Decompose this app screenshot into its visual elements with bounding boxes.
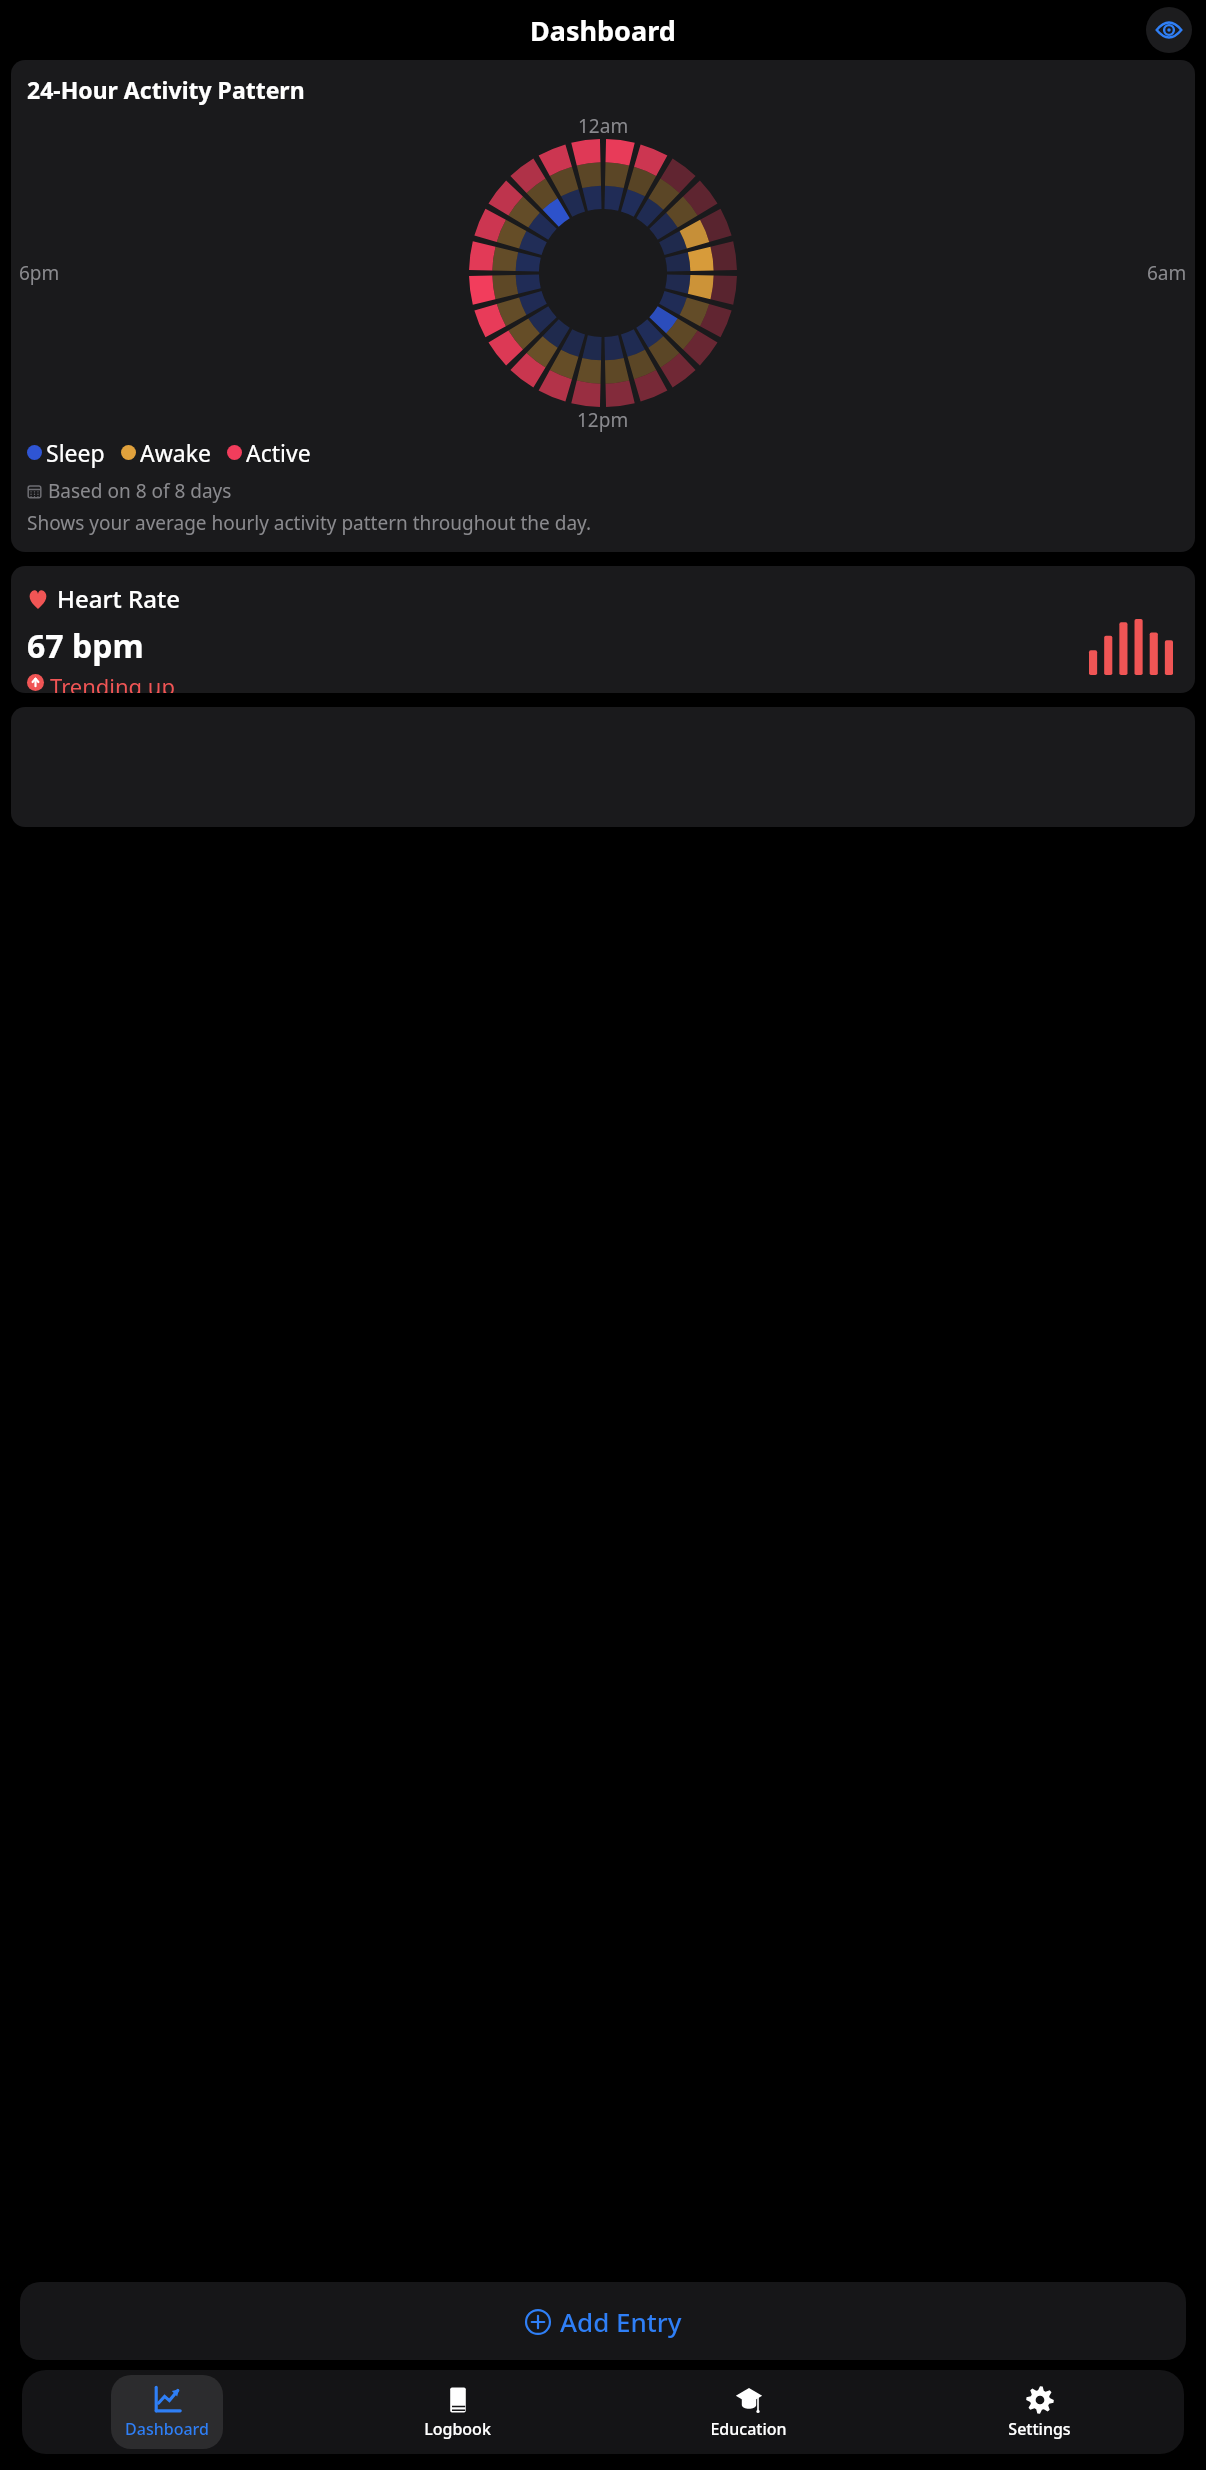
staticText: Shows your average hourly activity patte… xyxy=(27,510,592,536)
staticText: Active xyxy=(246,437,311,468)
button[interactable]: Logbook xyxy=(405,2375,509,2449)
button[interactable]: Heart Rate xyxy=(11,566,1195,693)
button[interactable]: Education xyxy=(696,2375,800,2449)
staticText: Trending up xyxy=(50,671,175,693)
staticText: 24-Hour Activity Pattern xyxy=(27,74,305,105)
staticText: Dashboard xyxy=(125,2418,209,2440)
staticText: Dashboard xyxy=(530,12,676,49)
staticText: Logbook xyxy=(424,2418,491,2440)
staticText: Education xyxy=(710,2418,787,2440)
staticText: 12am xyxy=(578,113,629,139)
staticText: Based on 8 of 8 days xyxy=(48,478,232,504)
staticText: Add Entry xyxy=(560,2304,682,2339)
staticText: 6pm xyxy=(19,260,60,286)
staticText: Awake xyxy=(140,437,211,468)
button[interactable]: Dashboard xyxy=(111,2375,223,2449)
button[interactable]: Add Entry xyxy=(20,2282,1186,2360)
staticText: 67 bpm xyxy=(27,624,144,668)
button[interactable]: Toggle visibility xyxy=(1146,7,1192,53)
staticText: 6am xyxy=(1147,260,1187,286)
staticText: 12pm xyxy=(577,407,629,433)
button[interactable]: 24-Hour Activity Pattern xyxy=(11,60,1195,552)
staticText: Heart Rate xyxy=(57,582,180,615)
staticText: Settings xyxy=(1008,2418,1071,2440)
staticText: Sleep xyxy=(46,437,105,468)
button[interactable]: Settings xyxy=(987,2375,1091,2449)
